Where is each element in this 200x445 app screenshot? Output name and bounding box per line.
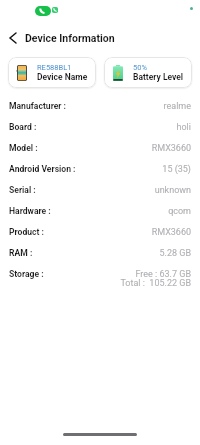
staticText: RAM :	[9, 248, 33, 258]
staticText: 50%	[133, 63, 147, 72]
staticText: holi	[176, 122, 191, 133]
staticText: Battery Level	[133, 72, 184, 82]
staticText: RE588BL1	[37, 63, 72, 72]
staticText: realme	[163, 101, 191, 112]
button[interactable]: 50%	[104, 57, 192, 88]
staticText: 5.28 GB	[159, 248, 191, 259]
button[interactable]: Product :	[9, 221, 191, 242]
button[interactable]: Storage :	[9, 263, 191, 284]
staticText: Model :	[9, 143, 38, 153]
staticText: qcom	[168, 206, 191, 217]
staticText: 15 (35)	[162, 164, 191, 175]
button[interactable]: Back	[1, 26, 25, 50]
staticText: Device Name	[37, 72, 88, 82]
button[interactable]: Hardware :	[9, 200, 191, 221]
staticText: Total : 105.22 GB	[120, 278, 191, 288]
staticText: RMX3660	[151, 143, 191, 154]
button[interactable]: RE588BL1	[8, 57, 96, 88]
staticText: Hardware :	[9, 206, 51, 216]
staticText: Storage :	[9, 269, 44, 279]
button[interactable]: Serial :	[9, 179, 191, 200]
staticText: RMX3660	[151, 227, 191, 238]
staticText: Product :	[9, 227, 45, 237]
button[interactable]: Manufacturer :	[9, 95, 191, 116]
staticText: Serial :	[9, 185, 36, 195]
staticText: Android Version :	[9, 164, 76, 174]
button[interactable]: Board :	[9, 116, 191, 137]
button[interactable]: Android Version :	[9, 158, 191, 179]
staticText: Free : 63.7 GB	[135, 269, 191, 280]
staticText: Board :	[9, 122, 37, 132]
staticText: Manufacturer :	[9, 101, 67, 111]
button[interactable]: Model :	[9, 137, 191, 158]
staticText: Device Information	[25, 32, 115, 44]
button[interactable]: RAM :	[9, 242, 191, 263]
staticText: unknown	[154, 185, 191, 196]
